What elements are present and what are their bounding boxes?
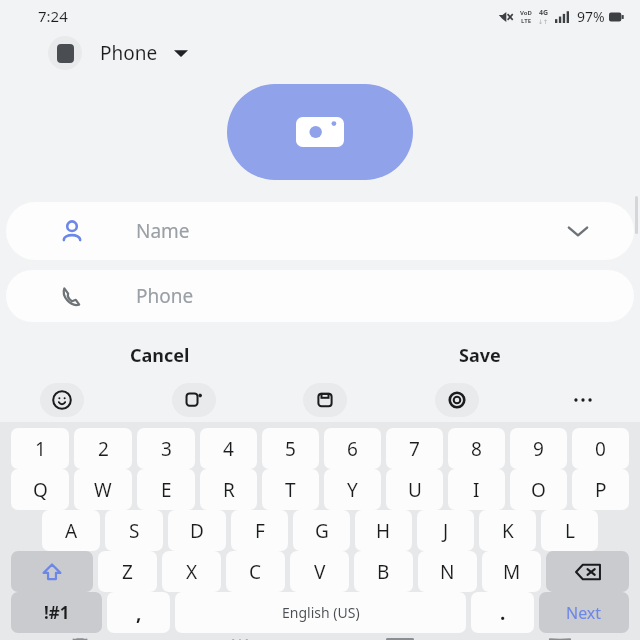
button[interactable]: M bbox=[482, 551, 541, 592]
staticText: V bbox=[314, 559, 326, 585]
staticText: W bbox=[94, 477, 112, 503]
staticText: K bbox=[502, 518, 514, 544]
button[interactable]: Clipboard bbox=[303, 383, 347, 417]
button[interactable]: U bbox=[386, 469, 443, 510]
button[interactable]: Add photo bbox=[227, 84, 413, 180]
staticText: 1 bbox=[35, 436, 46, 462]
button[interactable]: English (US) bbox=[175, 592, 466, 633]
staticText: 5 bbox=[285, 436, 296, 462]
staticText: 7:24 bbox=[38, 6, 68, 26]
staticText: E bbox=[161, 477, 172, 503]
staticText: 6 bbox=[347, 436, 358, 462]
button[interactable]: 6 bbox=[324, 428, 381, 469]
button[interactable]: I bbox=[448, 469, 505, 510]
button[interactable]: 4 bbox=[200, 428, 257, 469]
staticText: 3 bbox=[161, 436, 172, 462]
staticText: 4 bbox=[223, 436, 234, 462]
button[interactable]: Z bbox=[98, 551, 157, 592]
button[interactable]: T bbox=[262, 469, 319, 510]
button[interactable]: L bbox=[541, 510, 598, 551]
button[interactable]: W bbox=[74, 469, 132, 510]
button[interactable]: S bbox=[105, 510, 163, 551]
staticText: F bbox=[255, 518, 265, 544]
button[interactable]: P bbox=[572, 469, 629, 510]
staticText: 97% bbox=[577, 7, 605, 26]
button[interactable]: Home bbox=[320, 639, 480, 640]
button[interactable]: E bbox=[137, 469, 195, 510]
button[interactable]: K bbox=[479, 510, 536, 551]
button[interactable]: O bbox=[510, 469, 567, 510]
staticText: , bbox=[136, 600, 142, 626]
button[interactable]: . bbox=[471, 592, 534, 633]
staticText: 9 bbox=[533, 436, 544, 462]
button[interactable]: Name bbox=[6, 202, 634, 260]
button[interactable]: Hide keyboard bbox=[480, 639, 640, 640]
button[interactable]: Recents bbox=[160, 639, 320, 640]
staticText: B bbox=[377, 559, 390, 585]
button[interactable]: V bbox=[290, 551, 349, 592]
staticText: Name bbox=[136, 218, 190, 244]
button[interactable]: Shift bbox=[11, 551, 93, 592]
staticText: N bbox=[440, 559, 455, 585]
button[interactable]: X bbox=[162, 551, 221, 592]
staticText: J bbox=[443, 518, 449, 544]
staticText: T bbox=[285, 477, 296, 503]
button[interactable]: 1 bbox=[11, 428, 69, 469]
button[interactable]: 2 bbox=[74, 428, 132, 469]
button[interactable]: Backspace bbox=[546, 551, 629, 592]
button[interactable]: J bbox=[417, 510, 474, 551]
staticText: G bbox=[315, 518, 329, 544]
staticText: C bbox=[249, 559, 262, 585]
button[interactable]: Phone bbox=[6, 270, 634, 322]
staticText: 8 bbox=[471, 436, 482, 462]
button[interactable]: Cancel bbox=[0, 338, 320, 372]
button[interactable]: 7 bbox=[386, 428, 443, 469]
button[interactable]: B bbox=[354, 551, 413, 592]
button[interactable]: !#1 bbox=[11, 592, 102, 633]
button[interactable]: Translate bbox=[172, 383, 216, 417]
staticText: A bbox=[65, 518, 78, 544]
staticText: 2 bbox=[98, 436, 109, 462]
staticText: D bbox=[190, 518, 204, 544]
button[interactable]: G bbox=[293, 510, 350, 551]
staticText: 4G bbox=[539, 8, 549, 18]
button[interactable]: Emoji bbox=[40, 383, 84, 417]
button[interactable]: R bbox=[200, 469, 257, 510]
staticText: VoD bbox=[520, 9, 532, 17]
staticText: U bbox=[408, 477, 422, 503]
button[interactable]: Next bbox=[539, 592, 629, 633]
button[interactable]: Y bbox=[324, 469, 381, 510]
staticText: Next bbox=[566, 602, 602, 624]
staticText: English (US) bbox=[282, 603, 360, 622]
button[interactable]: H bbox=[355, 510, 412, 551]
button[interactable]: 0 bbox=[572, 428, 629, 469]
staticText: S bbox=[129, 518, 140, 544]
button[interactable]: Voice input bbox=[0, 639, 160, 640]
button[interactable]: Settings bbox=[435, 383, 479, 417]
staticText: Cancel bbox=[130, 343, 190, 368]
staticText: Y bbox=[347, 477, 358, 503]
button[interactable]: Save bbox=[320, 338, 640, 372]
button[interactable]: Q bbox=[11, 469, 69, 510]
other: Expand bbox=[566, 219, 590, 243]
button[interactable]: D bbox=[168, 510, 226, 551]
button[interactable]: , bbox=[107, 592, 170, 633]
button[interactable]: F bbox=[231, 510, 288, 551]
staticText: Save bbox=[459, 343, 501, 368]
staticText: Z bbox=[122, 559, 133, 585]
button[interactable]: 9 bbox=[510, 428, 567, 469]
button[interactable]: More options bbox=[566, 383, 600, 417]
staticText: LTE bbox=[521, 17, 532, 25]
button[interactable]: 5 bbox=[262, 428, 319, 469]
button[interactable]: C bbox=[226, 551, 285, 592]
button[interactable]: N bbox=[418, 551, 477, 592]
button[interactable]: A bbox=[42, 510, 100, 551]
staticText: X bbox=[186, 559, 198, 585]
staticText: P bbox=[595, 477, 607, 503]
staticText: 7 bbox=[409, 436, 420, 462]
staticText: Phone bbox=[100, 40, 158, 66]
staticText: !#1 bbox=[44, 601, 70, 624]
button[interactable]: 8 bbox=[448, 428, 505, 469]
button[interactable]: 3 bbox=[137, 428, 195, 469]
staticText: H bbox=[376, 518, 391, 544]
